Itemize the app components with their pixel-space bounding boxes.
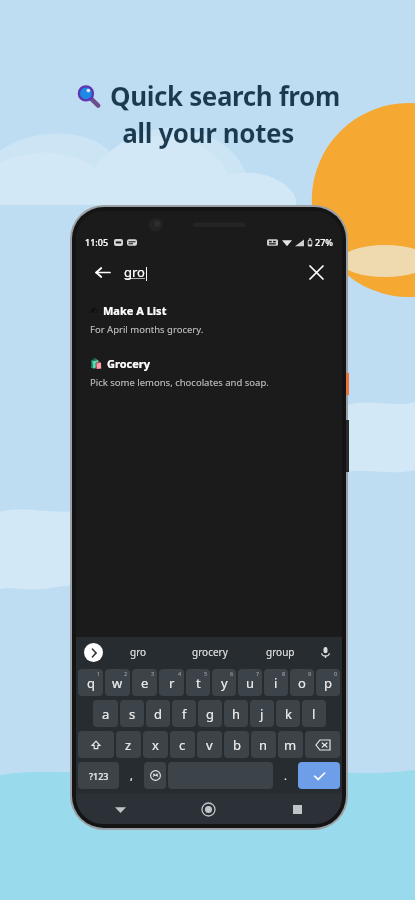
staticText: all your notes <box>122 115 294 150</box>
button[interactable]: y <box>212 669 236 696</box>
staticText: z <box>125 736 132 754</box>
button[interactable]: s <box>120 700 144 727</box>
staticText: h <box>232 705 241 723</box>
staticText: o <box>298 674 306 692</box>
button[interactable]: Emoji <box>144 762 166 789</box>
button[interactable]: ?123 <box>78 762 119 789</box>
button[interactable]: i <box>264 669 288 696</box>
staticText: 27% <box>315 236 333 248</box>
button[interactable]: Home <box>164 794 253 824</box>
staticText: w <box>112 674 123 692</box>
button[interactable]: n <box>251 731 276 758</box>
staticText: u <box>246 674 255 692</box>
button[interactable]: gro <box>103 637 174 667</box>
staticText: n <box>259 736 268 754</box>
staticText: , <box>130 768 133 783</box>
staticText: Pick some lemons, chocolates and soap. <box>90 376 269 389</box>
staticText: Grocery <box>107 356 150 371</box>
button[interactable]: a <box>93 700 118 727</box>
button[interactable]: Back <box>88 258 116 286</box>
staticText: 1 <box>97 670 101 677</box>
button[interactable]: Voice input <box>316 643 334 661</box>
staticText: Make A List <box>103 303 167 318</box>
button[interactable]: p <box>316 669 340 696</box>
button[interactable]: c <box>170 731 195 758</box>
staticText: y <box>221 674 228 692</box>
button[interactable]: m <box>278 731 303 758</box>
button[interactable]: j <box>250 700 274 727</box>
staticText: b <box>233 736 241 754</box>
staticText: Quick search from <box>110 78 340 113</box>
button[interactable]: v <box>197 731 222 758</box>
staticText: 3 <box>151 670 155 677</box>
staticText: c <box>179 736 186 754</box>
staticText: q <box>87 674 95 692</box>
staticText: 4 <box>178 670 182 677</box>
button[interactable]: x <box>143 731 168 758</box>
button[interactable]: , <box>121 762 142 789</box>
button[interactable]: f <box>172 700 196 727</box>
staticText: 0 <box>334 670 338 677</box>
staticText: r <box>169 674 175 692</box>
staticText: gro <box>130 645 147 659</box>
staticText: For April months grocery. <box>90 323 204 336</box>
staticText: j <box>260 705 264 723</box>
staticText: d <box>154 705 162 723</box>
button[interactable]: grocery <box>174 637 245 667</box>
staticText: grocery <box>192 645 228 659</box>
staticText: . <box>284 768 287 783</box>
staticText: f <box>182 705 187 723</box>
staticText: p <box>324 674 332 692</box>
staticText: 5 <box>204 670 208 677</box>
staticText: 7 <box>256 670 260 677</box>
button[interactable]: q <box>78 669 103 696</box>
staticText: t <box>196 674 201 692</box>
staticText: k <box>285 705 292 723</box>
staticText: g <box>206 705 214 723</box>
button[interactable]: r <box>159 669 184 696</box>
button[interactable]: o <box>290 669 314 696</box>
button[interactable]: u <box>238 669 262 696</box>
button[interactable]: l <box>302 700 326 727</box>
staticText: ✍️ <box>90 305 99 317</box>
button[interactable]: More suggestions <box>84 643 103 662</box>
staticText: s <box>129 705 136 723</box>
staticText: a <box>102 705 110 723</box>
staticText: 9 <box>308 670 312 677</box>
staticText: 8 <box>282 670 286 677</box>
button[interactable]: Backspace <box>305 731 340 758</box>
button[interactable]: b <box>224 731 249 758</box>
staticText: group <box>266 645 295 659</box>
staticText: m <box>284 736 297 754</box>
button[interactable]: e <box>132 669 157 696</box>
staticText: 11:05 <box>85 236 109 248</box>
button[interactable]: Done <box>298 762 340 789</box>
button[interactable]: t <box>186 669 210 696</box>
staticText: 6 <box>230 670 234 677</box>
staticText: e <box>141 674 149 692</box>
staticText: 2 <box>124 670 128 677</box>
button[interactable]: Recents <box>253 794 342 824</box>
button[interactable]: w <box>105 669 130 696</box>
button[interactable]: z <box>116 731 141 758</box>
button[interactable]: group <box>245 637 316 667</box>
staticText: v <box>206 736 213 754</box>
button[interactable]: Clear search <box>302 258 330 286</box>
button[interactable]: . <box>275 762 296 789</box>
button[interactable]: ✍️ <box>76 301 342 338</box>
button[interactable]: h <box>224 700 248 727</box>
button[interactable]: d <box>146 700 170 727</box>
button[interactable]: 🛍️ <box>76 354 342 391</box>
staticText: i <box>274 674 278 692</box>
staticText: l <box>312 705 316 723</box>
button[interactable]: g <box>198 700 222 727</box>
staticText: 🛍️ <box>90 358 103 370</box>
staticText: x <box>152 736 159 754</box>
button[interactable]: Back <box>76 794 164 824</box>
button[interactable]: k <box>276 700 300 727</box>
button[interactable]: Shift <box>78 731 114 758</box>
staticText: gro <box>124 263 145 281</box>
staticText: ?123 <box>89 770 109 782</box>
